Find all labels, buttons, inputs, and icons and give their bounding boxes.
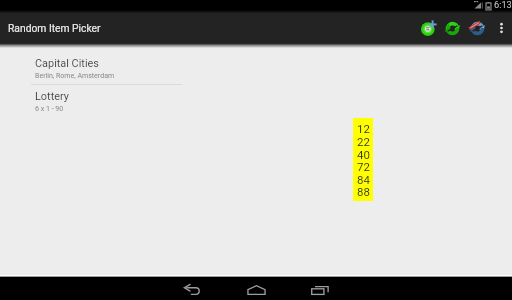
button[interactable]: Recent apps bbox=[289, 278, 351, 300]
staticText: 6 x 1 - 90 bbox=[35, 104, 64, 112]
button[interactable]: Capital Cities bbox=[0, 52, 512, 85]
button[interactable]: Back bbox=[161, 278, 223, 300]
staticText: 22 bbox=[357, 135, 370, 148]
button[interactable]: Lottery bbox=[0, 85, 512, 113]
button[interactable]: Home bbox=[225, 278, 287, 300]
button[interactable]: Add item bbox=[415, 13, 441, 43]
staticText: 6:13 bbox=[494, 0, 512, 10]
staticText: Random Item Picker bbox=[8, 22, 101, 34]
staticText: Capital Cities bbox=[35, 57, 99, 70]
staticText: 88 bbox=[357, 185, 370, 198]
staticText: Berlin, Rome, Amsterdam bbox=[35, 71, 115, 79]
button[interactable]: Shuffle bbox=[439, 13, 465, 43]
button[interactable]: More options bbox=[490, 13, 512, 43]
staticText: Lottery bbox=[35, 90, 69, 103]
button[interactable]: Mix bbox=[464, 13, 490, 43]
staticText: 40 bbox=[357, 148, 370, 161]
staticText: 84 bbox=[357, 173, 370, 186]
staticText: 72 bbox=[357, 160, 370, 173]
staticText: 12 bbox=[357, 122, 370, 135]
